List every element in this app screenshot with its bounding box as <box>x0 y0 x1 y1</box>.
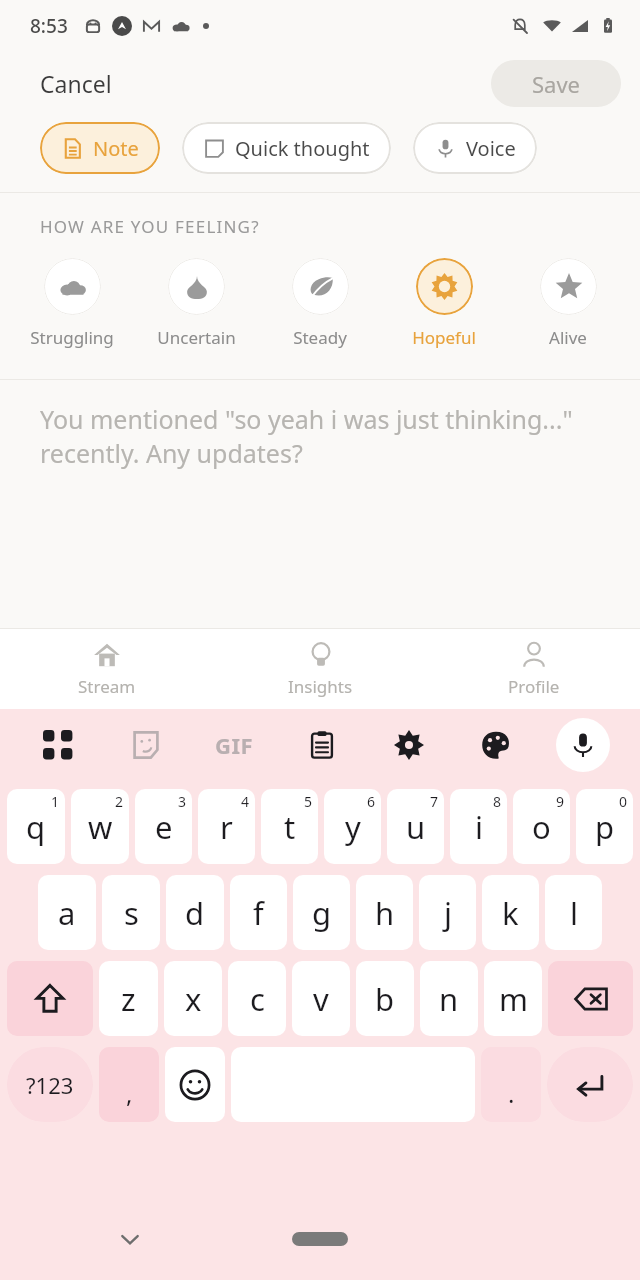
staticText: g <box>312 892 332 934</box>
button[interactable]: x <box>164 961 222 1036</box>
staticText: Uncertain <box>157 326 236 349</box>
staticText: r <box>220 806 233 848</box>
staticText: n <box>439 978 459 1020</box>
button[interactable]: GIF <box>190 709 278 781</box>
staticText: Voice <box>466 135 516 162</box>
button[interactable]: y <box>324 789 381 864</box>
button[interactable]: j <box>419 875 476 950</box>
button[interactable]: Alive <box>524 258 612 349</box>
button[interactable]: Note <box>40 122 160 174</box>
staticText: p <box>595 806 615 848</box>
button[interactable]: Theme <box>452 709 539 781</box>
staticText: Quick thought <box>235 135 370 162</box>
staticText: 8 <box>493 792 502 811</box>
button[interactable]: . <box>481 1047 541 1122</box>
staticText: j <box>444 892 452 934</box>
button[interactable]: g <box>293 875 350 950</box>
button[interactable]: Quick thought <box>182 122 391 174</box>
button[interactable]: w <box>71 789 129 864</box>
button[interactable]: c <box>228 961 286 1036</box>
staticText: ?123 <box>26 1070 74 1100</box>
button[interactable]: t <box>261 789 318 864</box>
button[interactable]: s <box>102 875 160 950</box>
staticText: x <box>185 978 202 1020</box>
staticText: o <box>532 806 551 848</box>
staticText: 8:53 <box>30 13 68 39</box>
button[interactable]: f <box>230 875 287 950</box>
staticText: d <box>185 892 205 934</box>
button[interactable]: Stream <box>0 629 214 709</box>
staticText: u <box>406 806 426 848</box>
button[interactable]: Profile <box>427 629 640 709</box>
button[interactable]: Voice input <box>556 718 610 772</box>
button[interactable]: Emoji <box>165 1047 225 1122</box>
staticText: 4 <box>241 792 250 811</box>
button[interactable]: l <box>545 875 602 950</box>
staticText: l <box>570 892 578 934</box>
button[interactable]: Voice <box>413 122 537 174</box>
button[interactable]: e <box>135 789 192 864</box>
staticText: v <box>313 978 329 1020</box>
button[interactable]: v <box>292 961 350 1036</box>
staticText: h <box>375 892 395 934</box>
button[interactable]: Uncertain <box>152 258 240 349</box>
button[interactable]: n <box>420 961 478 1036</box>
button[interactable]: Steady <box>276 258 364 349</box>
button[interactable]: Apps <box>14 709 102 781</box>
staticText: k <box>502 892 519 934</box>
button[interactable]: i <box>450 789 507 864</box>
staticText: s <box>124 892 139 934</box>
staticText: Cancel <box>40 68 112 99</box>
staticText: 1 <box>51 792 60 811</box>
staticText: 3 <box>178 792 187 811</box>
button[interactable]: m <box>484 961 542 1036</box>
staticText: z <box>121 978 136 1020</box>
button[interactable]: Hopeful <box>400 258 488 349</box>
staticText: t <box>284 806 296 848</box>
staticText: 0 <box>619 792 628 811</box>
staticText: GIF <box>215 730 254 760</box>
staticText: , <box>126 1077 133 1110</box>
button[interactable]: Shift <box>7 961 93 1036</box>
button[interactable]: Settings <box>365 709 452 781</box>
staticText: Alive <box>549 326 587 349</box>
button[interactable]: Clipboard <box>278 709 365 781</box>
button[interactable]: Cancel <box>20 60 132 107</box>
button[interactable]: h <box>356 875 413 950</box>
button[interactable]: q <box>7 789 65 864</box>
staticText: Profile <box>508 675 560 698</box>
button[interactable]: ?123 <box>7 1047 93 1122</box>
staticText: Save <box>532 69 581 99</box>
button[interactable]: u <box>387 789 444 864</box>
staticText: You mentioned "so yeah i was just thinki… <box>40 402 573 470</box>
staticText: y <box>345 806 361 848</box>
button[interactable]: Struggling <box>28 258 116 349</box>
staticText: . <box>508 1077 515 1110</box>
button[interactable]: p <box>576 789 633 864</box>
staticText: b <box>375 978 395 1020</box>
staticText: 6 <box>367 792 376 811</box>
staticText: e <box>155 806 173 848</box>
staticText: f <box>253 892 264 934</box>
button[interactable]: z <box>99 961 158 1036</box>
button[interactable]: , <box>99 1047 159 1122</box>
button[interactable]: Hide keyboard <box>108 1217 152 1261</box>
staticText: 9 <box>556 792 565 811</box>
staticText: Insights <box>288 675 353 698</box>
button[interactable]: Stickers <box>102 709 190 781</box>
staticText: m <box>499 978 528 1020</box>
button[interactable]: Insights <box>214 629 427 709</box>
button[interactable]: a <box>38 875 96 950</box>
button[interactable]: k <box>482 875 539 950</box>
button[interactable]: Backspace <box>548 961 633 1036</box>
staticText: Hopeful <box>412 326 476 349</box>
button[interactable]: Save <box>491 60 621 107</box>
button[interactable]: Enter <box>547 1047 633 1122</box>
staticText: 5 <box>304 792 313 811</box>
button[interactable]: b <box>356 961 414 1036</box>
button[interactable]: r <box>198 789 255 864</box>
button[interactable]: d <box>166 875 224 950</box>
button[interactable]: o <box>513 789 570 864</box>
staticText: a <box>58 892 76 934</box>
